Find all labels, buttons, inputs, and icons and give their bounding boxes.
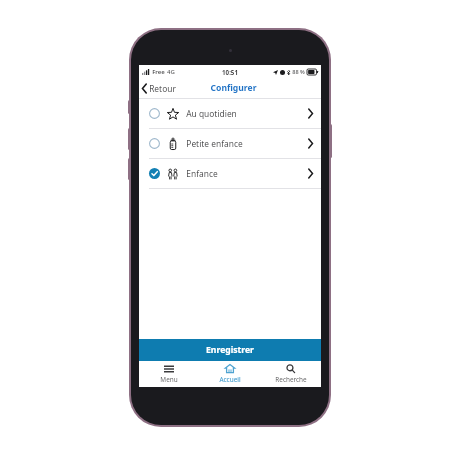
staticText: Petite enfance: [186, 138, 243, 149]
button[interactable]: Enfance: [139, 159, 321, 188]
button[interactable]: Accueil: [199, 361, 260, 387]
staticText: Enregistrer: [206, 344, 254, 356]
button[interactable]: Au quotidien: [139, 99, 321, 128]
button[interactable]: Retour: [139, 80, 180, 97]
staticText: 88 %: [292, 68, 305, 76]
staticText: Retour: [149, 83, 176, 94]
staticText: Accueil: [219, 375, 241, 384]
staticText: Configurer: [210, 82, 257, 94]
staticText: Free: [152, 68, 165, 76]
button[interactable]: Recherche: [260, 361, 321, 387]
staticText: Enfance: [186, 168, 218, 179]
staticText: 10:51: [222, 68, 238, 76]
staticText: Menu: [160, 375, 178, 384]
button[interactable]: Menu: [139, 361, 199, 387]
staticText: Au quotidien: [186, 108, 237, 119]
button[interactable]: Enregistrer: [139, 339, 321, 361]
button[interactable]: Petite enfance: [139, 129, 321, 158]
staticText: 4G: [167, 68, 175, 76]
staticText: Recherche: [275, 375, 307, 384]
